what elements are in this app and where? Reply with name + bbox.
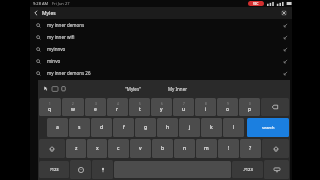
staticText: n [183, 145, 187, 152]
staticText: j [189, 124, 191, 131]
staticText: l [233, 124, 235, 131]
button[interactable]: 0 [239, 98, 260, 116]
staticText: o [226, 106, 230, 113]
button[interactable]: 5 [129, 98, 150, 116]
button[interactable]: x [87, 139, 107, 158]
button[interactable]: n [174, 139, 195, 158]
staticText: 1 [49, 102, 51, 106]
button[interactable]: Shift [39, 139, 65, 158]
button[interactable]: myinnvo [30, 43, 292, 55]
staticText: a [56, 124, 59, 131]
staticText: 6 [161, 102, 163, 106]
button[interactable]: a [47, 118, 68, 137]
button[interactable]: .?123 [232, 161, 263, 178]
staticText: t [139, 106, 141, 113]
staticText: my inner demons [47, 22, 85, 28]
staticText: x [96, 145, 99, 152]
button[interactable]: c [108, 139, 129, 158]
button[interactable]: s [69, 118, 90, 137]
staticText: ?123 [50, 167, 59, 172]
button[interactable]: minvo [30, 55, 292, 67]
staticText: z [75, 145, 78, 152]
staticText: c [117, 145, 120, 152]
button[interactable]: Insert suggestion [280, 20, 290, 30]
button[interactable]: d [91, 118, 112, 137]
staticText: y [160, 106, 163, 113]
staticText: ! [228, 145, 230, 152]
button[interactable]: 6 [151, 98, 172, 116]
button[interactable]: 1 [39, 98, 61, 116]
staticText: 9 [227, 102, 229, 106]
button[interactable]: my inner wifi [30, 31, 292, 43]
button[interactable]: 9 [217, 98, 238, 116]
button[interactable]: Insert suggestion [280, 44, 290, 54]
button[interactable]: Shift [262, 139, 289, 158]
button[interactable]: my inner demons 26 [30, 67, 292, 79]
staticText: Fri Jun 27 [52, 1, 70, 6]
button[interactable]: Voice input [92, 160, 113, 179]
button[interactable]: f [113, 118, 134, 137]
button[interactable]: ! [218, 139, 239, 158]
staticText: v [139, 145, 142, 152]
staticText: 7 [183, 102, 185, 106]
staticText: search [262, 125, 275, 130]
button[interactable]: j [179, 118, 200, 137]
button[interactable]: ? [240, 139, 261, 158]
button[interactable]: 2 [62, 98, 84, 116]
button[interactable]: k [201, 118, 222, 137]
staticText: My Inner [168, 86, 188, 92]
button[interactable]: b [152, 139, 173, 158]
staticText: q [48, 106, 52, 113]
button[interactable]: 4 [107, 98, 128, 116]
staticText: k [210, 124, 213, 131]
button[interactable]: Back [30, 7, 42, 19]
button[interactable]: Insert suggestion [280, 56, 290, 66]
staticText: i [205, 106, 207, 113]
button[interactable]: z [66, 139, 86, 158]
staticText: minvo [47, 58, 61, 64]
button[interactable]: h [157, 118, 178, 137]
button[interactable]: Clear [278, 7, 290, 19]
staticText: f [123, 124, 125, 131]
staticText: REC [253, 2, 259, 6]
staticText: my inner demons 26 [47, 70, 91, 76]
staticText: s [78, 124, 81, 131]
staticText: u [182, 106, 186, 113]
staticText: p [248, 106, 252, 113]
staticText: .?123 [243, 167, 253, 172]
button[interactable]: m [196, 139, 217, 158]
staticText: ? [249, 145, 252, 152]
staticText: 3 [95, 102, 97, 106]
button[interactable]: Insert suggestion [280, 32, 290, 42]
button[interactable]: "Myles" [122, 86, 144, 92]
button[interactable]: Insert suggestion [280, 68, 290, 78]
staticText: g [144, 124, 148, 131]
staticText: my inner wifi [47, 34, 75, 40]
button[interactable]: l [223, 118, 244, 137]
button[interactable]: 8 [195, 98, 216, 116]
staticText: b [161, 145, 165, 152]
button[interactable]: 7 [173, 98, 194, 116]
staticText: h [166, 124, 170, 131]
button[interactable]: 3 [85, 98, 106, 116]
staticText: Myles [42, 10, 56, 17]
button[interactable]: Clipboard [59, 84, 68, 93]
staticText: 9:28 AM [33, 1, 49, 6]
button[interactable]: Hide keyboard [264, 160, 289, 179]
staticText: myinnvo [47, 46, 66, 52]
button[interactable]: GIF [50, 84, 59, 93]
button[interactable]: Gboard [41, 84, 50, 93]
staticText: e [94, 106, 97, 113]
staticText: m [204, 145, 209, 152]
staticText: "Myles" [125, 86, 141, 92]
button[interactable]: v [130, 139, 151, 158]
button[interactable]: Backspace [261, 98, 289, 116]
button[interactable]: search [247, 118, 289, 137]
staticText: 8 [205, 102, 207, 106]
button[interactable]: Emoji [70, 160, 91, 179]
button[interactable]: g [135, 118, 156, 137]
button[interactable]: ?123 [39, 161, 69, 178]
button[interactable]: My Inner [165, 86, 191, 92]
button[interactable]: my inner demons [30, 19, 292, 31]
